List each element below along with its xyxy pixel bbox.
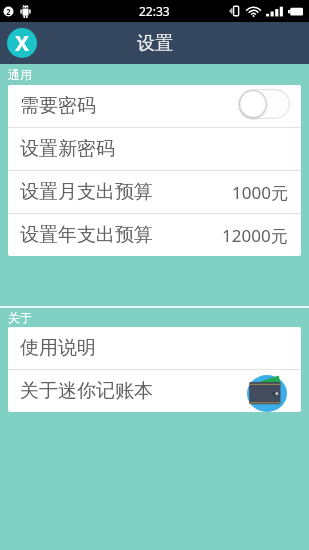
staticText: 设置年支出预算 <box>20 223 153 247</box>
staticText: 设置月支出预算 <box>20 180 153 204</box>
staticText: 使用说明 <box>20 336 96 360</box>
staticText: 通用 <box>8 67 32 82</box>
staticText: 关于迷你记账本 <box>20 379 153 403</box>
button[interactable]: 设置月支出预算 <box>8 171 301 213</box>
button[interactable]: 设置新密码 <box>8 128 301 170</box>
button[interactable]: 关于迷你记账本 <box>8 370 301 412</box>
staticText: 需要密码 <box>20 94 96 118</box>
staticText: 12000元 <box>222 224 288 247</box>
staticText: 1000元 <box>232 181 288 204</box>
staticText: X <box>15 29 30 58</box>
staticText: 2 <box>6 6 11 17</box>
button[interactable]: 需要密码 <box>8 85 301 127</box>
staticText: 设置新密码 <box>20 137 115 161</box>
button[interactable]: Close <box>7 28 37 58</box>
button[interactable]: 使用说明 <box>8 327 301 369</box>
staticText: 22:33 <box>139 3 170 19</box>
button[interactable]: 设置年支出预算 <box>8 214 301 256</box>
staticText: 关于 <box>8 310 32 325</box>
staticText: 设置 <box>137 32 173 55</box>
